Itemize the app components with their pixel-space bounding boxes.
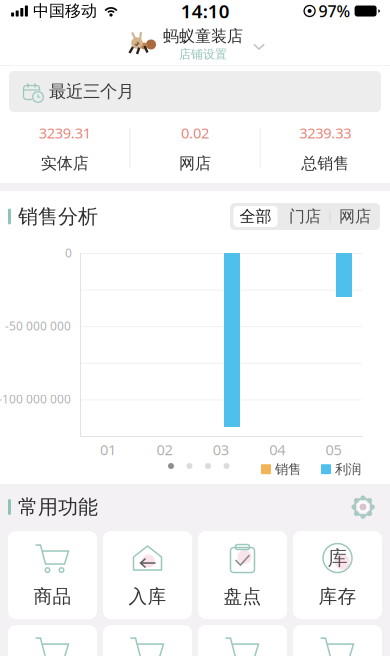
staticText: 全部 — [239, 207, 271, 226]
button[interactable]: 商品 — [8, 531, 97, 619]
button[interactable] — [8, 625, 97, 656]
staticText: 库 — [327, 546, 347, 570]
staticText: 0.02 — [181, 123, 209, 142]
staticText: 总销售 — [301, 153, 349, 173]
staticText: 02 — [156, 440, 172, 459]
staticText: 销售分析 — [18, 204, 98, 229]
staticText: 入库 — [128, 585, 166, 608]
staticText: 04 — [269, 440, 285, 459]
button[interactable]: 网店 — [330, 203, 379, 230]
staticText: 蚂蚁童装店 — [163, 26, 243, 46]
button[interactable]: 最近三个月 — [9, 71, 381, 112]
staticText: 0 — [65, 245, 72, 261]
staticText: 最近三个月 — [49, 81, 134, 102]
staticText: 店铺设置 — [179, 47, 227, 62]
staticText: 01 — [100, 440, 116, 459]
staticText: 03 — [213, 440, 229, 459]
button[interactable]: 门店 — [280, 203, 329, 230]
staticText: 14:10 — [181, 0, 230, 23]
staticText: 3239.31 — [39, 123, 91, 142]
button[interactable] — [293, 625, 382, 656]
staticText: 3239.33 — [299, 123, 351, 142]
staticText: 97% — [319, 0, 351, 22]
staticText: 实体店 — [41, 153, 89, 173]
button[interactable]: 入库 — [103, 531, 192, 619]
button[interactable]: 设置 — [346, 490, 380, 524]
staticText: 利润 — [335, 461, 361, 477]
button[interactable] — [198, 625, 287, 656]
staticText: 商品 — [33, 585, 71, 608]
staticText: 盘点 — [223, 585, 261, 608]
staticText: 销售 — [275, 461, 301, 477]
staticText: 门店 — [289, 207, 321, 226]
button[interactable]: 盘点 — [198, 531, 287, 619]
staticText: -100 000 000 — [0, 391, 71, 407]
staticText: 05 — [326, 440, 342, 459]
staticText: 网店 — [179, 153, 211, 173]
button[interactable]: 蚂蚁童装店 — [117, 22, 273, 66]
staticText: 网店 — [339, 207, 371, 226]
staticText: -50 000 000 — [5, 318, 71, 334]
button[interactable]: 全部 — [230, 203, 280, 230]
staticText: 常用功能 — [18, 495, 98, 519]
button[interactable]: 库 — [293, 531, 382, 619]
button[interactable] — [103, 625, 192, 656]
staticText: 中国移动 — [33, 1, 97, 21]
staticText: 库存 — [318, 585, 356, 608]
